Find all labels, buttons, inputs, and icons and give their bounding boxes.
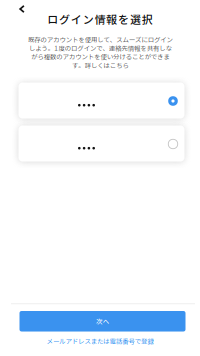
staticText: ログイン情報を選択	[47, 12, 153, 26]
button[interactable]: Back	[12, 0, 32, 18]
staticText: 次へ	[96, 317, 109, 325]
staticText: 既存のアカウントを使用して、スムーズにログイン しよう。1度のログインで、連絡先…	[28, 35, 172, 69]
button[interactable]: メールアドレスまたは電話番号で登録	[10, 336, 190, 346]
button[interactable]	[18, 82, 184, 118]
staticText: メールアドレスまたは電話番号で登録	[47, 337, 153, 345]
button[interactable]: 次へ	[19, 311, 185, 331]
button[interactable]	[18, 125, 184, 161]
